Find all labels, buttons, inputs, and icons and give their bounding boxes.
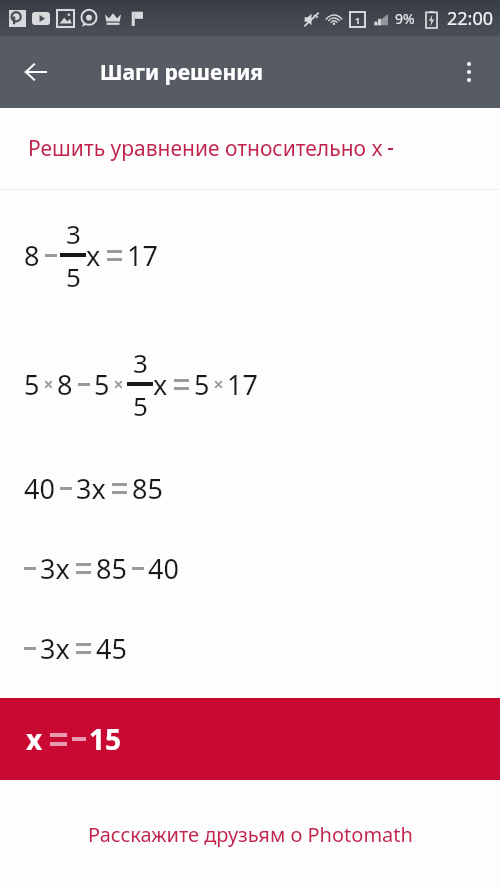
staticText: 9%	[395, 9, 415, 28]
staticText: 45	[96, 630, 127, 667]
staticText: 3	[66, 216, 81, 251]
button[interactable]: Ещё	[446, 49, 492, 95]
button[interactable]: 8	[0, 190, 500, 320]
staticText: 5	[66, 259, 81, 294]
staticText: 5	[133, 388, 148, 423]
staticText: 85	[96, 550, 127, 587]
staticText: Шаги решения	[100, 58, 264, 87]
staticText: 17	[227, 366, 258, 403]
staticText: 3x	[40, 550, 70, 587]
staticText: 85	[132, 470, 163, 507]
staticText: 15	[89, 720, 122, 758]
staticText: 8	[24, 237, 40, 274]
button[interactable]: 3x	[0, 528, 500, 608]
button[interactable]: 5	[0, 320, 500, 448]
staticText: 22:00	[447, 6, 494, 31]
staticText: 3x	[40, 630, 70, 667]
staticText: x	[26, 720, 43, 758]
button[interactable]: x	[0, 698, 500, 780]
staticText: 40	[148, 550, 179, 587]
button[interactable]: 3x	[0, 608, 500, 688]
staticText: 5	[94, 366, 110, 403]
staticText: x	[86, 237, 101, 274]
staticText: 3x	[76, 470, 106, 507]
staticText: 5	[24, 366, 40, 403]
staticText: Расскажите друзьям о Photomath	[88, 821, 413, 848]
staticText: 1	[355, 14, 361, 26]
staticText: 40	[24, 470, 55, 507]
staticText: Решить уравнение относительно x	[28, 134, 383, 163]
staticText: x	[153, 366, 168, 403]
staticText: 17	[127, 237, 158, 274]
button[interactable]: 40	[0, 448, 500, 528]
staticText: 5	[194, 366, 210, 403]
button[interactable]: Назад	[12, 48, 60, 96]
staticText: 3	[133, 345, 148, 380]
button[interactable]: Расскажите друзьям о Photomath	[0, 780, 500, 888]
staticText: 8	[57, 366, 73, 403]
